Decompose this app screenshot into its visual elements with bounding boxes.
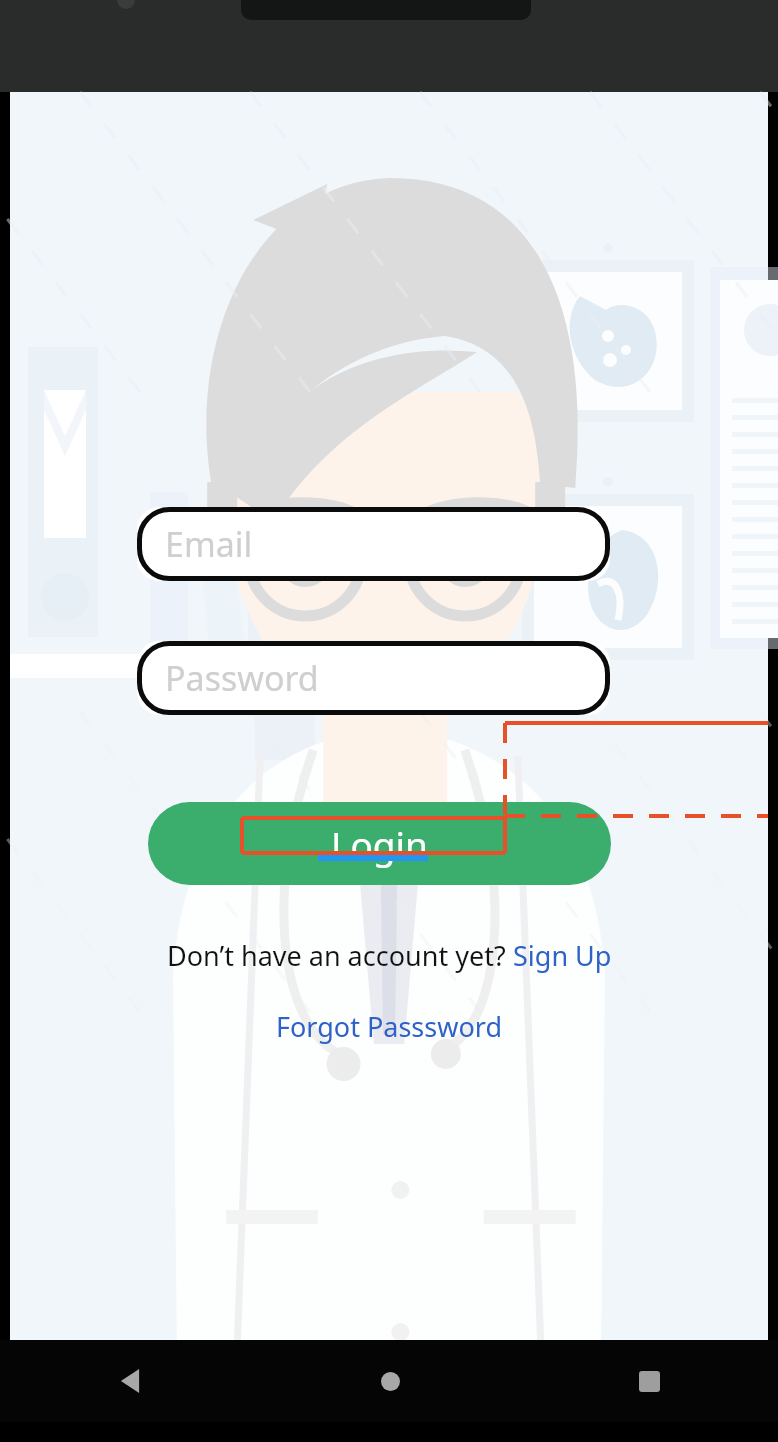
button[interactable]: Sign Up <box>513 937 612 974</box>
staticText: Sign Up <box>513 937 612 974</box>
staticText: Email <box>165 521 253 567</box>
staticText: Forgot Passsword <box>276 1008 502 1045</box>
button[interactable]: Recent apps <box>619 1351 679 1411</box>
button[interactable]: Email <box>137 507 610 581</box>
button[interactable]: Home <box>360 1351 420 1411</box>
staticText: Password <box>165 655 319 701</box>
button[interactable]: Login <box>148 802 611 885</box>
staticText: Login <box>331 819 428 869</box>
staticText: Don’t have an account yet? <box>167 937 513 974</box>
button[interactable]: Back <box>100 1351 160 1411</box>
button[interactable]: Password <box>137 641 610 715</box>
button[interactable]: Forgot Passsword <box>276 1008 502 1045</box>
